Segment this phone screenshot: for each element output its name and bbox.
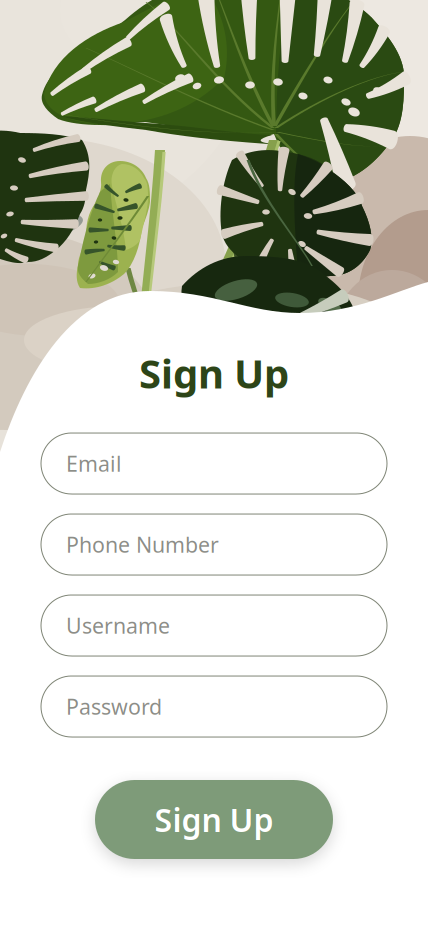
staticText: Sign Up	[139, 346, 289, 399]
staticText: Email	[66, 449, 122, 478]
button[interactable]: Username	[41, 595, 387, 656]
button[interactable]: Sign Up	[95, 780, 333, 859]
button[interactable]: Email	[41, 433, 387, 494]
staticText: Phone Number	[66, 530, 219, 559]
staticText: Password	[66, 692, 162, 721]
staticText: Sign Up	[154, 798, 273, 841]
button[interactable]: Phone Number	[41, 514, 387, 575]
staticText: Username	[66, 611, 170, 640]
button[interactable]: Password	[41, 676, 387, 737]
